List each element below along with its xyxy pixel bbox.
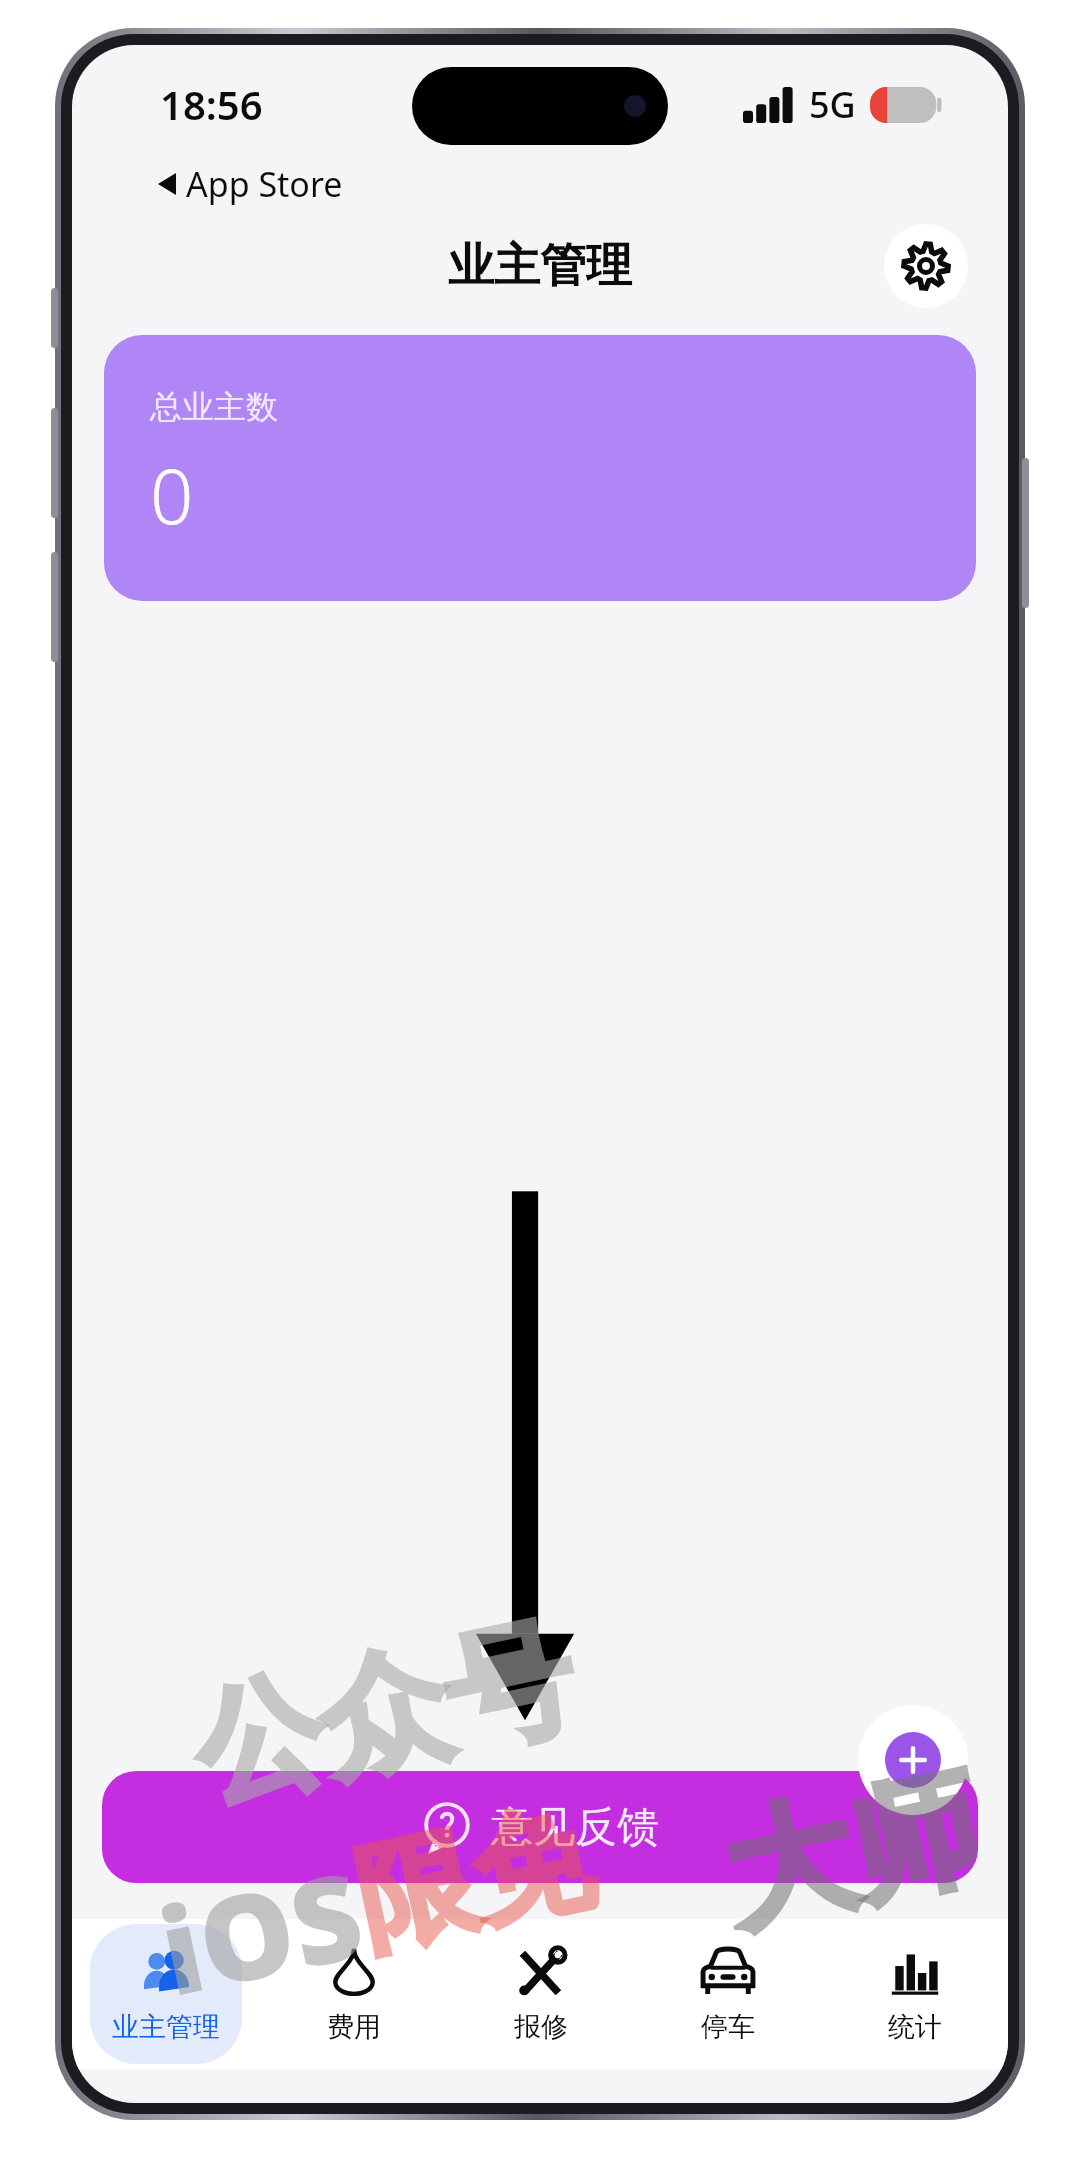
staticText: 报修: [514, 2010, 568, 2044]
staticText: 公众号: [179, 1596, 589, 1833]
staticText: 大师: [710, 1747, 994, 1958]
staticText: iOS: [146, 1831, 376, 2031]
staticText: 限免: [343, 1782, 604, 1977]
button[interactable]: 费用: [260, 1919, 447, 2069]
button[interactable]: 报修: [447, 1919, 634, 2069]
staticText: 业主管理: [448, 237, 632, 295]
staticText: 停车: [701, 2010, 755, 2044]
button[interactable]: App Store: [152, 157, 349, 211]
staticText: 费用: [327, 2010, 381, 2044]
staticText: 5G: [809, 80, 856, 129]
button[interactable]: 意见反馈: [102, 1771, 978, 1883]
button[interactable]: 停车: [634, 1919, 821, 2069]
button[interactable]: Add owner: [858, 1705, 968, 1815]
button[interactable]: 总业主数: [104, 335, 976, 601]
button[interactable]: 业主管理: [72, 1919, 260, 2069]
staticText: 18:56: [160, 77, 263, 131]
staticText: App Store: [186, 161, 343, 207]
staticText: 总业主数: [150, 387, 278, 427]
button[interactable]: 统计: [821, 1919, 1008, 2069]
staticText: 统计: [888, 2010, 942, 2044]
staticText: 业主管理: [112, 2010, 220, 2044]
staticText: 意见反馈: [491, 1801, 659, 1854]
button[interactable]: Settings: [884, 224, 968, 308]
staticText: 0: [150, 443, 194, 547]
